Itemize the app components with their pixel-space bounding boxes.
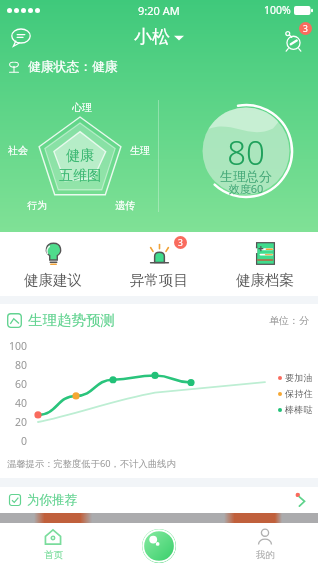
staticText: 40 — [1, 396, 27, 410]
staticText: 保持住 — [285, 388, 313, 400]
staticText: 异常项目 — [130, 271, 188, 289]
staticText: 9:20 AM — [138, 3, 180, 18]
staticText: 首页 — [44, 549, 63, 561]
staticText: 20 — [1, 415, 27, 429]
staticText: 温馨提示：完整度低于60，不计入曲线内 — [7, 457, 176, 470]
staticText: 心理 — [72, 101, 92, 114]
button[interactable]: 我的 — [212, 523, 318, 566]
staticText: 效度60 — [196, 181, 296, 196]
button[interactable]: Messages — [5, 21, 37, 53]
staticText: 生理 — [130, 144, 150, 157]
button[interactable]: 首页 — [0, 523, 106, 566]
staticText: 遗传 — [115, 199, 135, 212]
button[interactable]: 3 — [106, 232, 212, 296]
staticText: 要加油 — [285, 372, 313, 384]
staticText: 健康建议 — [24, 271, 82, 289]
staticText: 健康档案 — [236, 271, 294, 289]
staticText: 棒棒哒 — [285, 404, 313, 416]
staticText: 单位：分 — [269, 314, 309, 327]
staticText: 3 — [178, 237, 183, 249]
staticText: 60 — [1, 377, 27, 391]
button[interactable]: 小松 — [134, 26, 184, 49]
staticText: 80 — [1, 358, 27, 372]
staticText: 3 — [303, 23, 308, 35]
button[interactable]: 为你推荐 — [0, 487, 318, 513]
staticText: 五维图 — [59, 167, 101, 185]
staticText: 生理总分 — [196, 168, 296, 184]
staticText: 为你推荐 — [27, 492, 77, 508]
staticText: 100 — [1, 339, 27, 353]
staticText: 健康状态：健康 — [28, 59, 118, 75]
staticText: 健康 — [66, 147, 94, 165]
button[interactable]: 健康档案 — [212, 232, 318, 296]
staticText: 生理趋势预测 — [28, 311, 115, 329]
staticText: 行为 — [27, 199, 47, 212]
button[interactable]: Reminders — [282, 22, 312, 52]
staticText: 小松 — [134, 26, 170, 49]
button[interactable]: Assistant — [142, 529, 176, 563]
button[interactable]: 健康建议 — [0, 232, 106, 296]
staticText: 100% — [264, 3, 291, 17]
staticText: 0 — [1, 434, 27, 448]
staticText: 我的 — [256, 549, 275, 561]
staticText: 社会 — [8, 144, 28, 157]
staticText: 80 — [196, 130, 296, 175]
